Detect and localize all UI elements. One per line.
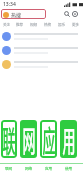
staticText: 关注 [3,22,11,27]
button[interactable] [2,29,81,43]
button[interactable]: 使用 [60,166,77,171]
staticText: 网络 [25,166,33,171]
button[interactable]: 应 [40,120,57,158]
staticText: 用 [62,120,76,158]
staticText: 更多 [72,22,80,27]
staticText: 使用 [65,166,73,171]
staticText: 热榜 [44,22,52,27]
staticText: 网 [22,120,36,158]
button[interactable]: 用 [60,120,77,158]
button[interactable]: 热榜 [41,21,55,27]
button[interactable]: 视频 [27,21,41,27]
staticText: 热搜 [11,11,22,18]
button[interactable]: Search [62,9,72,19]
button[interactable]: 关注 [0,21,13,27]
staticText: 联网 [5,166,13,171]
button[interactable] [2,43,81,57]
button[interactable]: 网络 [20,166,37,171]
staticText: 推荐 [16,22,24,27]
staticText: 13:34 [3,1,16,8]
button[interactable]: 推荐 [13,21,27,27]
button[interactable]: 热搜 [1,9,46,19]
button[interactable]: 更多 [69,21,83,27]
button[interactable]: 网 [20,120,37,158]
button[interactable]: 联 [1,120,17,158]
button[interactable] [2,57,81,71]
staticText: 联 [2,120,16,158]
staticText: 娱乐 [58,22,66,27]
button[interactable]: Account [70,9,80,19]
staticText: 应 [42,120,56,158]
staticText: 应用 [45,166,53,171]
button[interactable]: 联网 [1,166,17,171]
button[interactable]: 应用 [40,166,57,171]
button[interactable]: 娱乐 [55,21,69,27]
staticText: 视频 [30,22,38,27]
